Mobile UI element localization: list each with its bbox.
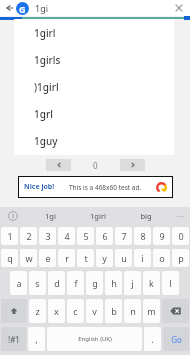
button[interactable]: u <box>115 249 132 267</box>
button[interactable]: t <box>77 249 94 267</box>
staticText: q <box>7 252 13 264</box>
button[interactable]: k <box>143 271 160 295</box>
staticText: 1girl <box>90 211 106 221</box>
staticText: f <box>74 277 78 289</box>
button[interactable]: Next page <box>120 159 145 171</box>
staticText: d <box>54 277 60 289</box>
button[interactable]: 7 <box>115 227 132 245</box>
staticText: e <box>45 252 51 264</box>
staticText: r <box>65 252 69 264</box>
button[interactable]: 5 <box>77 227 94 245</box>
button[interactable]: i <box>134 249 151 267</box>
button[interactable]: big <box>122 207 170 225</box>
staticText: 5 <box>83 230 89 242</box>
staticText: )1girl <box>34 80 59 94</box>
button[interactable]: m <box>143 299 160 323</box>
button[interactable]: !#1 <box>1 327 26 351</box>
staticText: Go <box>171 334 182 345</box>
staticText: 3 <box>45 230 51 242</box>
staticText: g <box>92 277 98 289</box>
button[interactable]: w <box>20 249 37 267</box>
button[interactable]: English (UK) <box>47 327 142 351</box>
staticText: k <box>149 277 154 289</box>
button[interactable]: 1girl <box>74 207 122 225</box>
button[interactable]: )1girl <box>14 73 174 100</box>
button[interactable]: x <box>48 299 65 323</box>
button[interactable]: 1guy <box>14 127 174 154</box>
button[interactable]: Google <box>16 2 29 15</box>
staticText: 0 <box>178 230 184 242</box>
staticText: i <box>141 252 144 264</box>
staticText: 1grl <box>34 107 53 121</box>
staticText: big <box>140 211 152 221</box>
staticText: t <box>84 252 88 264</box>
button[interactable]: f <box>67 271 84 295</box>
staticText: . <box>151 333 154 345</box>
staticText: b <box>111 305 117 317</box>
button[interactable]: 2 <box>20 227 37 245</box>
staticText: 6 <box>102 230 108 242</box>
staticText: n <box>130 305 136 317</box>
staticText: Nice job! <box>24 182 55 192</box>
staticText: l <box>169 277 172 289</box>
button[interactable]: n <box>124 299 141 323</box>
staticText: s <box>35 277 40 289</box>
staticText: 1gi <box>35 2 49 14</box>
button[interactable]: 1gi <box>26 207 74 225</box>
staticText: u <box>121 252 127 264</box>
button[interactable]: . <box>144 327 161 351</box>
staticText: 0 <box>93 160 98 171</box>
button[interactable]: 4 <box>58 227 75 245</box>
staticText: 1girl <box>34 26 56 40</box>
staticText: h <box>111 277 117 289</box>
button[interactable]: Backspace <box>162 299 189 323</box>
button[interactable]: l <box>162 271 179 295</box>
button[interactable]: 6 <box>96 227 113 245</box>
staticText: 8 <box>140 230 146 242</box>
staticText: 9 <box>159 230 165 242</box>
button[interactable]: 8 <box>134 227 151 245</box>
button[interactable]: 1 <box>1 227 18 245</box>
button[interactable]: a <box>10 271 27 295</box>
button[interactable]: y <box>96 249 113 267</box>
button[interactable]: b <box>105 299 122 323</box>
button[interactable]: o <box>153 249 170 267</box>
button[interactable]: c <box>67 299 84 323</box>
button[interactable]: Shift <box>1 299 27 323</box>
button[interactable]: More suggestions <box>170 207 190 225</box>
button[interactable]: 9 <box>153 227 170 245</box>
button[interactable]: Close <box>173 2 185 14</box>
button[interactable]: 0 <box>172 227 189 245</box>
button[interactable]: e <box>39 249 56 267</box>
button[interactable]: z <box>29 299 46 323</box>
button[interactable]: Back <box>3 2 15 14</box>
staticText: 1 <box>7 230 13 242</box>
staticText: j <box>131 277 134 289</box>
staticText: c <box>73 305 78 317</box>
button[interactable]: v <box>86 299 103 323</box>
button[interactable]: p <box>172 249 189 267</box>
button[interactable]: 1girl <box>14 19 174 46</box>
button[interactable]: Go <box>163 327 189 351</box>
button[interactable]: Previous page <box>46 159 71 171</box>
button[interactable]: r <box>58 249 75 267</box>
button[interactable]: s <box>29 271 46 295</box>
button[interactable]: 3 <box>39 227 56 245</box>
staticText: 1girls <box>34 53 61 67</box>
button[interactable]: 1grl <box>14 100 174 127</box>
button[interactable]: d <box>48 271 65 295</box>
button[interactable]: g <box>86 271 103 295</box>
staticText: This is a 468x60 test ad. <box>69 183 142 192</box>
button[interactable]: h <box>105 271 122 295</box>
button[interactable]: , <box>28 327 45 351</box>
button[interactable]: j <box>124 271 141 295</box>
button[interactable]: Voice input <box>0 207 26 225</box>
staticText: , <box>35 333 38 345</box>
button[interactable]: q <box>1 249 18 267</box>
staticText: !#1 <box>8 334 20 345</box>
staticText: G <box>19 3 26 15</box>
staticText: English (UK) <box>78 335 112 343</box>
button[interactable]: Nice job! <box>19 177 172 197</box>
staticText: 4 <box>64 230 70 242</box>
button[interactable]: 1girls <box>14 46 174 73</box>
